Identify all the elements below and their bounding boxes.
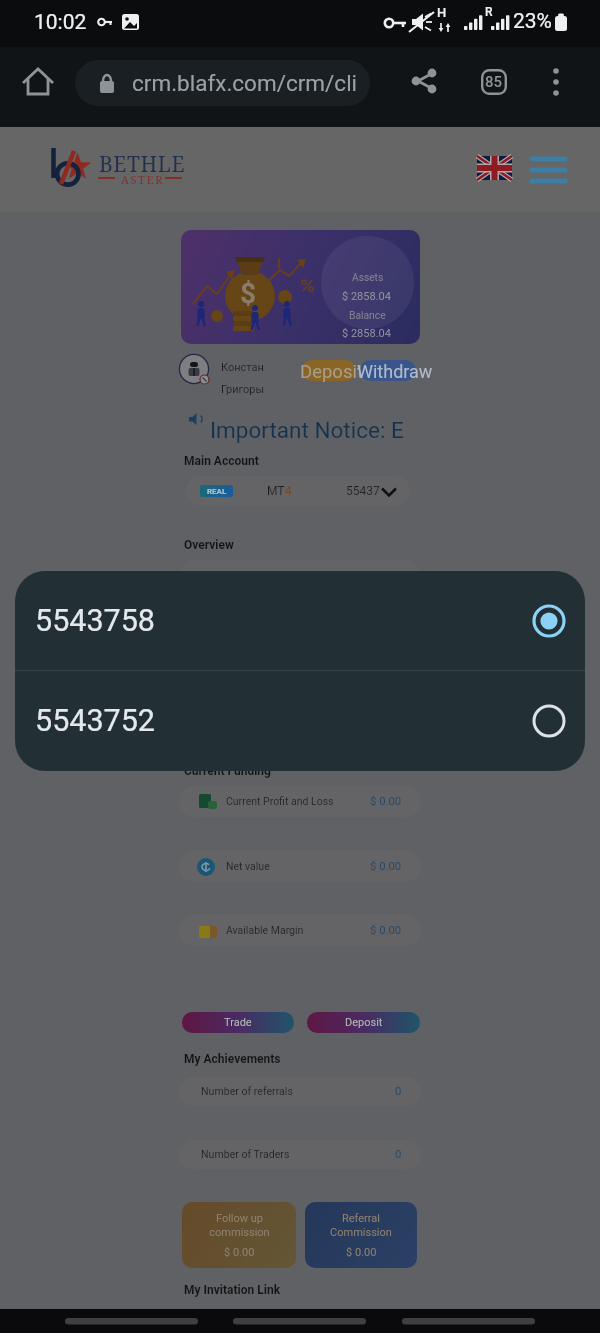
staticText: My Invitation Link (184, 1283, 281, 1297)
staticText: 23% (513, 9, 552, 34)
staticText: 5543758 (35, 603, 155, 639)
button[interactable]: Profile (179, 354, 210, 385)
staticText: Number of referrals (201, 1085, 293, 1097)
staticText: Referral Commission (330, 1212, 392, 1239)
button[interactable]: Available Margin (179, 915, 421, 946)
staticText: $ 0.00 (370, 795, 402, 808)
staticText: Trade (224, 1016, 252, 1029)
staticText: Important Notice: E (210, 417, 404, 443)
staticText: $ 0.00 (370, 924, 402, 937)
button[interactable]: Tabs (481, 69, 507, 95)
button[interactable]: REAL (186, 476, 410, 506)
staticText: Available Margin (226, 924, 304, 936)
staticText: $ 0.00 (370, 860, 402, 873)
button[interactable]: Number of Traders (179, 1140, 421, 1169)
staticText: $ 2858.04 (342, 327, 391, 340)
staticText: Assets (352, 272, 384, 284)
staticText: 0 (395, 1085, 402, 1098)
staticText: Overview (184, 538, 234, 552)
staticText: Number of Traders (201, 1148, 290, 1160)
staticText: 10:02 (34, 10, 87, 35)
button[interactable]: Home (14, 58, 62, 106)
button[interactable]: Notice (186, 410, 406, 444)
button[interactable]: crm.blafx.com/crm/cli (75, 60, 370, 106)
staticText: REAL (207, 487, 227, 496)
staticText: 85 (485, 73, 503, 91)
button[interactable]: 5543758 (15, 571, 585, 670)
button[interactable]: More options (534, 58, 578, 106)
button[interactable]: Net value (179, 851, 421, 882)
button[interactable]: Share (400, 57, 448, 105)
staticText: crm.blafx.com/crm/cli (132, 70, 358, 96)
button[interactable]: Menu (526, 150, 570, 190)
staticText: 5543752 (35, 703, 155, 739)
staticText: $ (240, 277, 257, 310)
button[interactable]: Deposit (307, 1012, 420, 1033)
staticText: R (485, 5, 493, 19)
staticText: Констан (221, 361, 264, 374)
button[interactable]: Trade (182, 1012, 294, 1033)
button[interactable]: 5543752 (15, 671, 585, 771)
staticText: Deposit (300, 361, 363, 383)
staticText: Current Funding (184, 764, 271, 778)
button[interactable]: $ (181, 230, 420, 344)
staticText: $ 0.00 (346, 1246, 377, 1259)
staticText: $ 2858.04 (342, 290, 391, 303)
button[interactable]: Referral Commission (305, 1202, 417, 1268)
staticText: BETHLE (99, 150, 186, 179)
button[interactable]: Follow up commission (182, 1202, 296, 1268)
button[interactable]: Current Profit and Loss (179, 786, 421, 817)
staticText: My Achievements (184, 1052, 281, 1066)
button[interactable] (360, 360, 416, 381)
staticText: $ 0.00 (224, 1246, 255, 1259)
button[interactable] (302, 360, 356, 381)
staticText: 55437 (346, 484, 380, 498)
staticText: Main Account (184, 454, 259, 468)
staticText: Deposit (345, 1016, 383, 1029)
staticText: 4 (285, 484, 292, 498)
staticText: ASTER (121, 172, 165, 187)
button[interactable]: Language (477, 156, 512, 180)
staticText: Net value (226, 860, 270, 872)
button[interactable]: Number of referrals (179, 1077, 421, 1106)
staticText: MT (267, 484, 285, 498)
staticText: Follow up commission (209, 1212, 270, 1239)
staticText: Balance (349, 309, 386, 321)
staticText: Withdraw (357, 361, 433, 382)
staticText: Current Profit and Loss (226, 795, 334, 807)
staticText: H (437, 5, 447, 20)
staticText: 0 (395, 1148, 402, 1161)
staticText: Григоры (221, 383, 265, 396)
